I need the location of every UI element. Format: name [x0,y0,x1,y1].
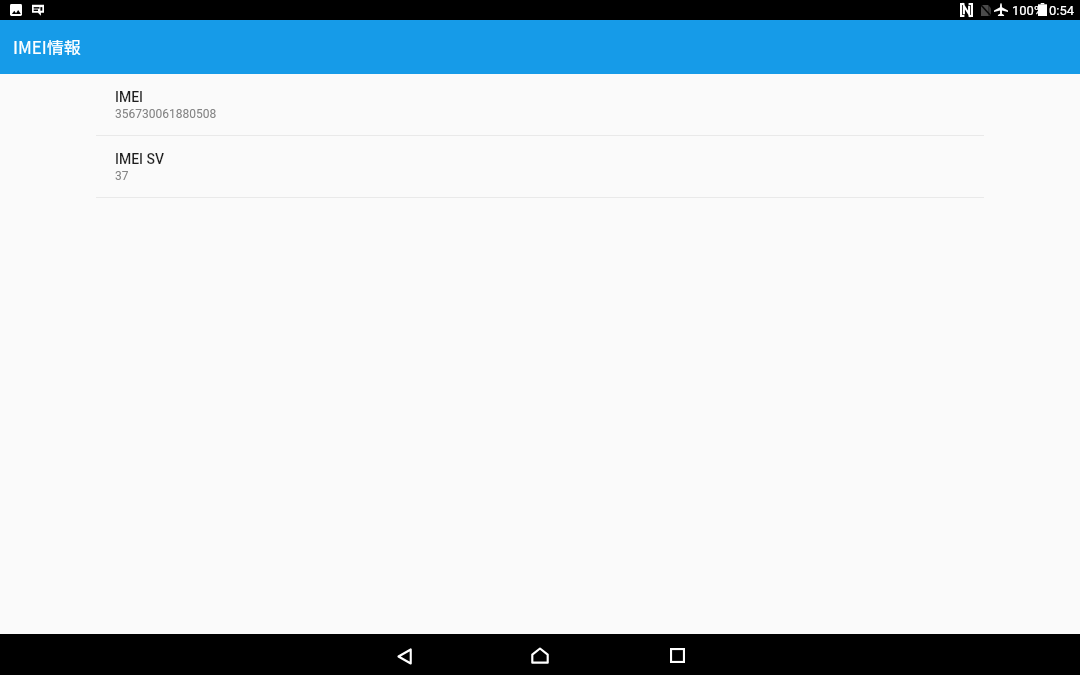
staticText: 100% [1012,3,1044,18]
button[interactable]: Recent apps [654,635,700,675]
button[interactable]: Back [381,636,427,675]
staticText: IMEI情報 [13,34,81,59]
staticText: 0:54 [1049,3,1075,18]
staticText: 356730061880508 [115,107,217,121]
button[interactable]: IMEI [0,74,1080,136]
staticText: IMEI SV [115,151,165,167]
button[interactable]: Home [517,635,563,675]
staticText: IMEI [115,89,144,105]
button[interactable]: IMEI SV [0,136,1080,198]
staticText: 37 [115,169,129,183]
